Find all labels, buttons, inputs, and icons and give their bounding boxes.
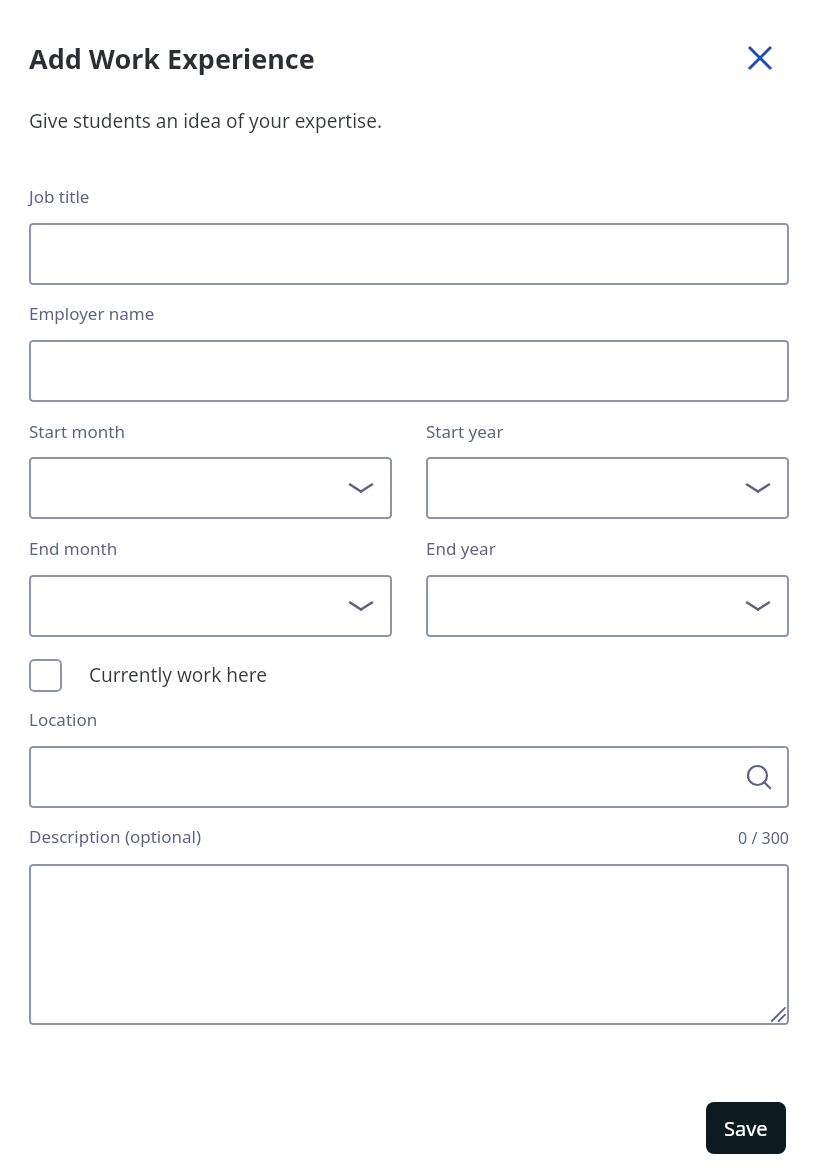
staticText: End month [29, 537, 118, 560]
button[interactable]: Close [738, 36, 782, 80]
button[interactable]: Description [29, 864, 789, 1025]
staticText: Start year [426, 420, 504, 443]
staticText: Currently work here [89, 662, 267, 688]
staticText: Employer name [29, 302, 155, 325]
button[interactable]: Start year [426, 457, 789, 519]
button[interactable]: Save [706, 1102, 786, 1154]
staticText: End year [426, 537, 496, 560]
button[interactable]: Currently work here [29, 658, 309, 692]
button[interactable]: Employer name [29, 340, 789, 402]
staticText: Add Work Experience [29, 40, 315, 77]
staticText: 0 / 300 [689, 827, 789, 854]
staticText: Give students an idea of your expertise. [29, 108, 383, 134]
staticText: Save [724, 1115, 768, 1142]
staticText: Description (optional) [29, 825, 202, 848]
button[interactable]: End year [426, 575, 789, 637]
button[interactable]: End month [29, 575, 392, 637]
button[interactable]: Job title [29, 223, 789, 285]
staticText: Job title [29, 185, 90, 208]
button[interactable]: Start month [29, 457, 392, 519]
staticText: Start month [29, 420, 125, 443]
button[interactable]: Location search [29, 746, 789, 808]
staticText: Location [29, 708, 98, 731]
